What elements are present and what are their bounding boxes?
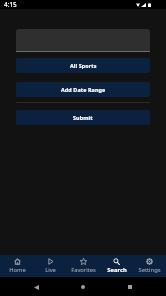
- staticText: 4:15: [4, 0, 17, 9]
- button[interactable]: Favorites: [67, 255, 100, 277]
- button[interactable]: Home: [0, 255, 34, 277]
- staticText: All Sports: [70, 62, 97, 69]
- button[interactable]: Settings: [133, 255, 166, 277]
- button[interactable]: Submit: [16, 110, 150, 125]
- staticText: Search: [107, 266, 127, 274]
- button[interactable]: Recent apps: [123, 280, 137, 294]
- button[interactable]: Search: [100, 255, 133, 277]
- staticText: Add Date Range: [61, 86, 106, 93]
- button[interactable]: Add Date Range: [16, 82, 150, 97]
- button[interactable]: All Sports: [16, 58, 150, 73]
- staticText: Settings: [138, 266, 161, 274]
- staticText: Live: [45, 266, 56, 274]
- staticText: Submit: [73, 114, 93, 121]
- button[interactable]: Back: [29, 280, 43, 294]
- button[interactable]: Home: [76, 280, 90, 294]
- staticText: Favorites: [71, 266, 96, 274]
- staticText: Home: [9, 266, 26, 274]
- button[interactable]: Live: [34, 255, 67, 277]
